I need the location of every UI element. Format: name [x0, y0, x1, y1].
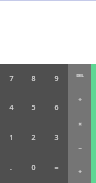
staticText: −	[78, 144, 82, 151]
button[interactable]: .	[0, 153, 22, 183]
button[interactable]: 7	[0, 64, 22, 93]
staticText: 4	[9, 103, 14, 113]
button[interactable]: 6	[45, 93, 68, 123]
staticText: 3	[54, 133, 59, 143]
button[interactable]: 5	[22, 93, 45, 123]
button[interactable]: Multiply	[68, 111, 91, 135]
button[interactable]: Subtract	[68, 135, 91, 159]
staticText: 5	[31, 103, 36, 113]
button[interactable]: 1	[0, 123, 22, 153]
staticText: ×	[78, 120, 82, 127]
staticText: 1	[9, 133, 14, 143]
button[interactable]: 8	[22, 64, 45, 93]
staticText: 6	[54, 103, 59, 113]
button[interactable]: DEL	[68, 64, 91, 87]
button[interactable]: =	[45, 153, 68, 183]
staticText: =	[54, 163, 59, 173]
staticText: 9	[54, 74, 59, 84]
staticText: ÷	[78, 96, 82, 103]
staticText: DEL	[76, 73, 84, 78]
staticText: 7	[9, 74, 14, 84]
staticText: 0	[31, 163, 36, 173]
staticText: .	[10, 163, 12, 173]
button[interactable]: Divide	[68, 87, 91, 111]
button[interactable]: 3	[45, 123, 68, 153]
staticText: +	[78, 168, 82, 175]
button[interactable]: 9	[45, 64, 68, 93]
button[interactable]: 0	[22, 153, 45, 183]
button[interactable]: 4	[0, 93, 22, 123]
button[interactable]: 2	[22, 123, 45, 153]
staticText: 8	[31, 74, 36, 84]
staticText: 2	[31, 133, 36, 143]
button[interactable]: Add	[68, 159, 91, 183]
